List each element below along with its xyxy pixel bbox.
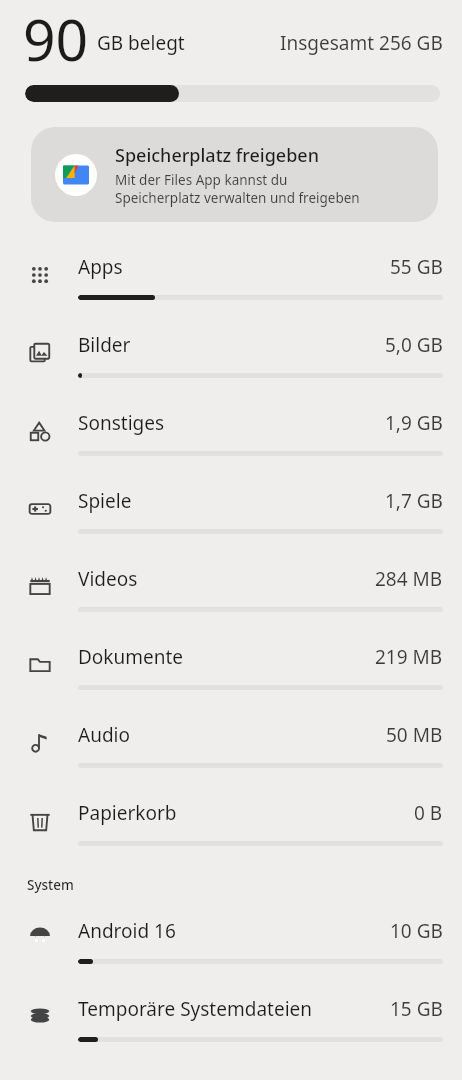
button[interactable]: Dokumente bbox=[0, 632, 462, 710]
button[interactable]: Videos bbox=[0, 554, 462, 632]
button[interactable]: Audio bbox=[0, 710, 462, 788]
staticText: 15 GB bbox=[390, 996, 443, 1022]
staticText: 90 bbox=[23, 0, 89, 68]
button[interactable]: Speicherplatz freigeben bbox=[31, 127, 438, 222]
button[interactable]: Bilder bbox=[0, 320, 462, 398]
button[interactable]: Apps bbox=[0, 242, 462, 320]
staticText: 284 MB bbox=[375, 566, 443, 592]
staticText: Sonstiges bbox=[78, 410, 165, 436]
button[interactable]: Spiele bbox=[0, 476, 462, 554]
staticText: Mit der Files App kannst du Speicherplat… bbox=[115, 171, 360, 207]
staticText: 50 MB bbox=[386, 722, 443, 748]
button[interactable]: Sonstiges bbox=[0, 398, 462, 476]
staticText: Videos bbox=[78, 566, 138, 592]
staticText: 0 B bbox=[414, 800, 443, 826]
staticText: 5,0 GB bbox=[385, 332, 443, 358]
staticText: 10 GB bbox=[390, 918, 443, 944]
staticText: Spiele bbox=[78, 488, 132, 514]
button[interactable]: Temporäre Systemdateien bbox=[0, 984, 462, 1062]
staticText: Dokumente bbox=[78, 644, 184, 670]
staticText: GB belegt bbox=[97, 30, 185, 56]
staticText: Android 16 bbox=[78, 918, 176, 944]
staticText: 1,9 GB bbox=[385, 410, 443, 436]
staticText: 1,7 GB bbox=[385, 488, 443, 514]
staticText: Bilder bbox=[78, 332, 131, 358]
staticText: Temporäre Systemdateien bbox=[78, 996, 312, 1022]
staticText: 55 GB bbox=[390, 254, 443, 280]
staticText: Insgesamt 256 GB bbox=[280, 30, 443, 56]
staticText: 219 MB bbox=[375, 644, 443, 670]
staticText: Papierkorb bbox=[78, 800, 177, 826]
staticText: Audio bbox=[78, 722, 130, 748]
button[interactable]: Papierkorb bbox=[0, 788, 462, 866]
button[interactable]: Android 16 bbox=[0, 906, 462, 984]
staticText: System bbox=[27, 876, 74, 894]
staticText: Speicherplatz freigeben bbox=[115, 143, 319, 168]
staticText: Apps bbox=[78, 254, 123, 280]
